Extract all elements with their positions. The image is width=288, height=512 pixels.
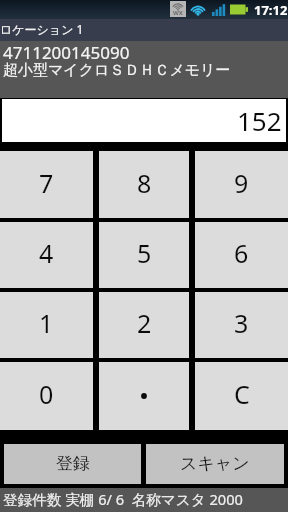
staticText: 152 [237, 103, 282, 138]
staticText: 6 [234, 236, 249, 270]
staticText: 7 [39, 166, 54, 200]
staticText: 17:12 [254, 1, 288, 19]
staticText: 2 [137, 306, 152, 340]
staticText: C [234, 377, 250, 411]
other: WX notification [170, 1, 186, 17]
staticText: ロケーション 1 [0, 21, 84, 37]
button[interactable]: 5 [99, 222, 189, 288]
button[interactable]: 6 [195, 222, 288, 288]
staticText: 登録件数 実棚 6/ 6 名称マスタ 2000 [3, 489, 243, 509]
button[interactable]: 4 [0, 222, 93, 288]
button[interactable]: 152 [2, 99, 286, 142]
button[interactable]: スキャン [146, 444, 284, 484]
staticText: 3 [234, 306, 249, 340]
staticText: 登録 [56, 453, 90, 474]
button[interactable]: 2 [99, 292, 189, 358]
button[interactable]: 1 [0, 292, 93, 358]
staticText: 9 [234, 166, 249, 200]
staticText: 1 [39, 306, 54, 340]
button[interactable]: 0 [0, 362, 93, 430]
button[interactable]: C [195, 362, 288, 430]
staticText: 超小型マイクロＳＤＨＣメモリー [3, 61, 231, 80]
button[interactable]: 3 [195, 292, 288, 358]
staticText: 4 [39, 236, 54, 270]
button[interactable] [99, 362, 189, 430]
staticText: 4711200145090 [3, 41, 130, 64]
staticText: 5 [137, 236, 152, 270]
button[interactable]: 登録 [4, 444, 141, 484]
button[interactable]: 9 [195, 151, 288, 218]
button[interactable]: 8 [99, 151, 189, 218]
staticText: 8 [137, 166, 152, 200]
staticText: WX [173, 9, 183, 17]
button[interactable]: 7 [0, 151, 93, 218]
staticText: スキャン [180, 453, 250, 474]
staticText: 0 [39, 377, 54, 411]
